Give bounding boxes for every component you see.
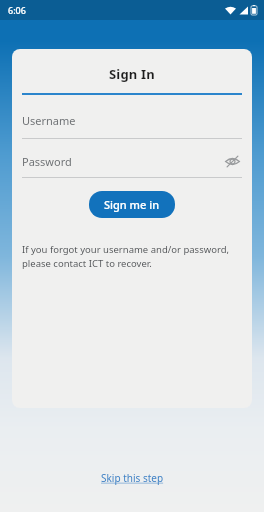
staticText: If you forgot your username and/or passw…	[22, 243, 242, 270]
button[interactable]: Password	[12, 151, 252, 178]
button[interactable]: Username	[12, 113, 252, 139]
button[interactable]: Skip this step	[91, 466, 174, 490]
staticText: Skip this step	[101, 471, 164, 485]
button[interactable]: Show password	[222, 151, 242, 171]
button[interactable]: Sign me in	[89, 191, 175, 218]
staticText: 6:06	[8, 4, 26, 16]
staticText: Sign In	[12, 65, 252, 83]
staticText: Username	[22, 113, 76, 128]
staticText: Password	[22, 154, 72, 169]
staticText: Sign me in	[104, 197, 160, 212]
